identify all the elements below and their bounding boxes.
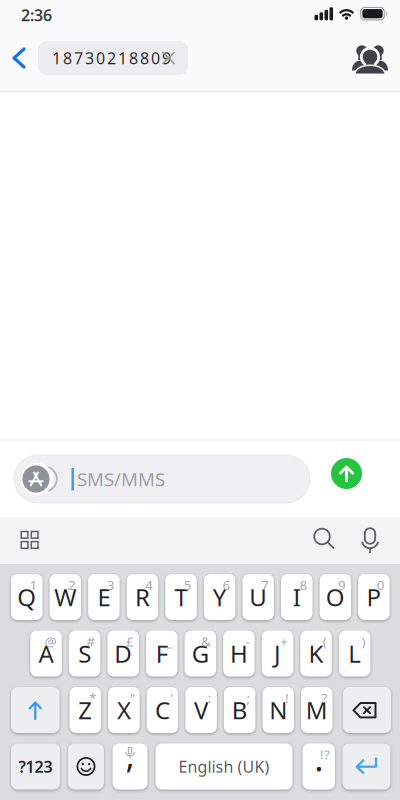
staticText: B <box>232 694 248 726</box>
staticText: X <box>117 694 131 726</box>
button[interactable]: D <box>107 630 139 676</box>
button[interactable]: Return <box>342 743 390 789</box>
staticText: # <box>86 632 95 650</box>
staticText: D <box>114 638 132 669</box>
staticText: N <box>269 694 287 726</box>
staticText: 5 <box>184 576 192 594</box>
staticText: ' <box>170 689 173 707</box>
button[interactable]: Emoji <box>68 743 104 789</box>
button[interactable]: 1 8 7 3 0 2 1 8 8 0 9 <box>38 41 188 75</box>
button[interactable]: G <box>185 630 216 676</box>
button[interactable]: Send <box>331 458 362 489</box>
button[interactable]: F <box>146 630 177 676</box>
button[interactable]: Back <box>0 36 44 80</box>
staticText: Y <box>213 581 227 613</box>
button[interactable]: E <box>88 574 120 620</box>
staticText: G <box>192 638 209 669</box>
staticText: L <box>348 638 361 669</box>
button[interactable]: W <box>50 574 81 620</box>
staticText: : <box>208 689 212 707</box>
button[interactable]: Delete <box>343 687 391 733</box>
button[interactable]: V <box>185 687 217 733</box>
staticText: !? <box>320 745 330 763</box>
button[interactable]: M <box>301 687 333 733</box>
staticText: 6 <box>222 576 230 594</box>
staticText: + <box>280 632 288 650</box>
staticText: 8 <box>299 576 307 594</box>
button[interactable]: , <box>112 743 147 789</box>
button[interactable]: H <box>223 630 255 676</box>
staticText: ? <box>322 689 328 707</box>
staticText: 2 <box>68 576 76 594</box>
button[interactable]: S <box>69 630 100 676</box>
button[interactable]: Shift <box>11 687 60 733</box>
staticText: C <box>155 694 170 726</box>
button[interactable]: A <box>30 630 62 676</box>
staticText: @ <box>45 632 57 650</box>
button[interactable]: Keyboard menu <box>9 519 49 559</box>
button[interactable]: P <box>358 574 390 620</box>
button[interactable]: Voice input <box>350 519 390 559</box>
staticText: English (UK) <box>178 756 269 777</box>
staticText: 0 <box>377 576 385 594</box>
staticText: R <box>135 581 150 613</box>
button[interactable]: B <box>224 687 255 733</box>
staticText: ?123 <box>18 756 52 777</box>
button[interactable]: N <box>262 687 294 733</box>
staticText: _ <box>166 632 172 650</box>
staticText: U <box>249 581 267 613</box>
button[interactable]: U <box>242 574 274 620</box>
staticText: 4 <box>145 576 153 594</box>
staticText: T <box>175 581 188 613</box>
staticText: F <box>156 638 168 669</box>
staticText: 9 <box>338 576 346 594</box>
staticText: W <box>54 581 76 613</box>
staticText: S <box>78 638 91 669</box>
staticText: J <box>274 638 281 669</box>
staticText: & <box>201 632 211 650</box>
button[interactable]: R <box>127 574 158 620</box>
staticText: I <box>293 581 301 613</box>
button[interactable]: iMessage apps <box>16 457 60 501</box>
staticText: V <box>194 694 208 726</box>
button[interactable]: Q <box>11 574 42 620</box>
staticText: ( <box>323 632 327 650</box>
button[interactable]: C <box>147 687 178 733</box>
staticText: K <box>309 638 324 669</box>
staticText: ) <box>361 632 365 650</box>
button[interactable]: . <box>302 743 335 789</box>
button[interactable]: English (UK) <box>155 743 292 789</box>
staticText: E <box>97 581 110 613</box>
staticText: H <box>230 638 248 669</box>
staticText: 3 <box>107 576 115 594</box>
staticText: 1 8 7 3 0 2 1 8 8 0 9 <box>52 47 171 69</box>
button[interactable]: Z <box>70 687 101 733</box>
button[interactable]: ?123 <box>11 743 60 789</box>
staticText: O <box>326 581 345 613</box>
button[interactable]: X <box>108 687 140 733</box>
staticText: P <box>366 581 381 613</box>
button[interactable]: O <box>320 574 351 620</box>
staticText: Z <box>78 694 92 726</box>
button[interactable]: J <box>262 630 293 676</box>
staticText: SMS/MMS <box>77 467 165 491</box>
button[interactable]: T <box>165 574 197 620</box>
button[interactable]: Y <box>204 574 235 620</box>
staticText: A <box>38 638 53 669</box>
staticText: ; <box>246 689 250 707</box>
button[interactable]: Contacts <box>347 37 391 81</box>
staticText: 2:36 <box>21 4 52 26</box>
button[interactable]: L <box>339 630 370 676</box>
staticText: £ <box>126 632 134 650</box>
button[interactable]: I <box>281 574 312 620</box>
staticText: M <box>306 694 328 726</box>
staticText: " <box>130 689 135 707</box>
staticText: - <box>246 632 250 650</box>
staticText: ! <box>285 689 289 707</box>
button[interactable]: Search <box>305 517 345 557</box>
staticText: 7 <box>261 576 269 594</box>
staticText: * <box>89 689 96 707</box>
staticText: . <box>314 735 323 781</box>
button[interactable]: K <box>300 630 332 676</box>
staticText: , <box>125 732 134 778</box>
